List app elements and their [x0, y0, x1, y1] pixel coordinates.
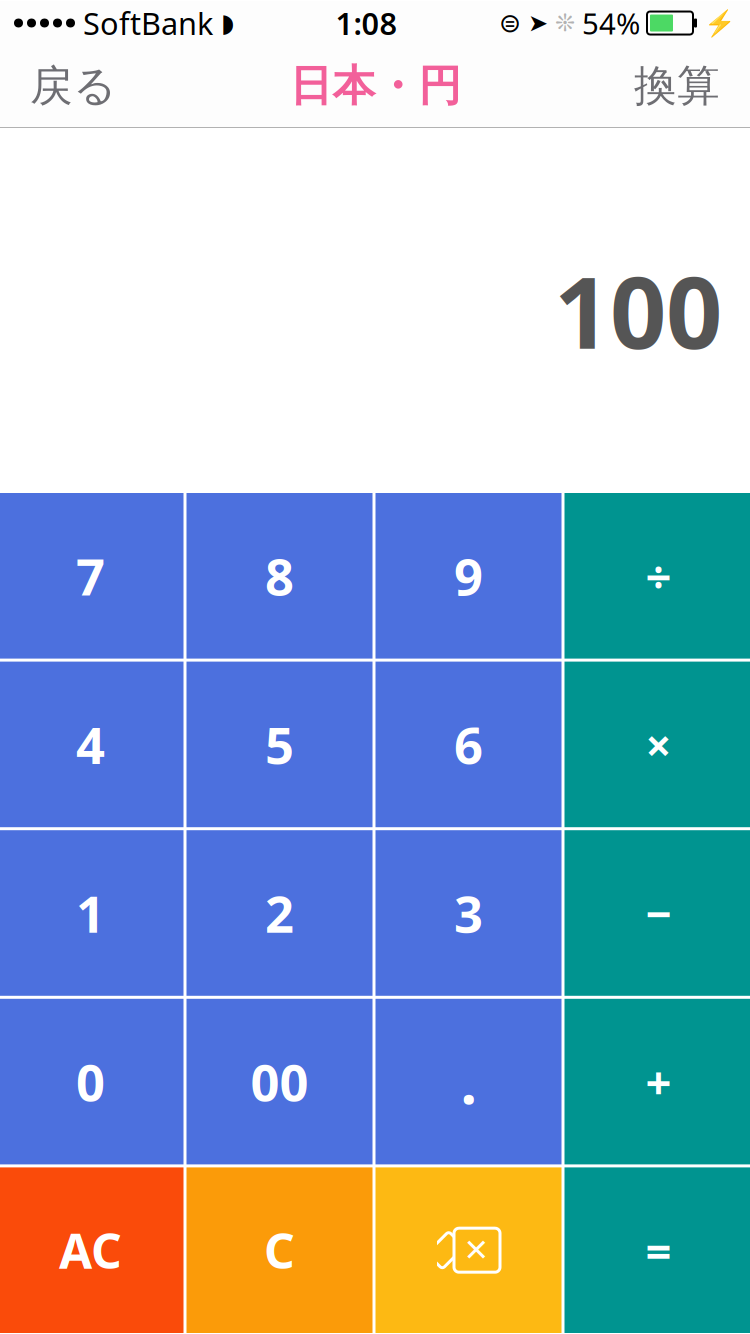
staticText: 2 [265, 879, 294, 947]
button[interactable]: 3 [375, 830, 561, 996]
button[interactable]: 5 [186, 662, 372, 827]
staticText: ◗ [221, 9, 234, 37]
button[interactable]: AC [0, 1167, 183, 1333]
staticText: C [264, 1218, 295, 1282]
staticText: + [645, 1051, 671, 1112]
button[interactable]: 2 [186, 830, 372, 996]
button[interactable]: C [186, 1167, 372, 1333]
staticText: 7 [76, 542, 105, 609]
staticText: × [645, 714, 671, 774]
staticText: 3 [454, 879, 483, 947]
button[interactable]: 4 [0, 662, 183, 827]
staticText: 1 [76, 879, 105, 947]
button[interactable]: = [564, 1167, 750, 1333]
button[interactable]: 8 [186, 493, 372, 659]
button[interactable]: 00 [186, 999, 372, 1164]
staticText: ⚡ [704, 8, 736, 37]
staticText: 0 [76, 1048, 105, 1115]
staticText: 8 [265, 542, 294, 609]
button[interactable]: . [375, 999, 561, 1164]
staticText: 6 [454, 711, 483, 778]
button[interactable]: 1 [0, 830, 183, 996]
staticText: 1:08 [335, 3, 397, 43]
staticText: ÷ [645, 546, 671, 606]
staticText: ✕ [463, 1233, 489, 1268]
staticText: 9 [454, 542, 483, 609]
staticText: 換算 [634, 60, 720, 112]
staticText: 100 [554, 245, 722, 376]
staticText: SoftBank [83, 3, 213, 43]
staticText: ⊜ [499, 8, 521, 38]
staticText: 日本・円 [289, 60, 461, 112]
staticText: 4 [76, 711, 105, 778]
button[interactable]: 9 [375, 493, 561, 659]
button[interactable]: − [564, 830, 750, 996]
button[interactable]: + [564, 999, 750, 1164]
button[interactable]: 7 [0, 493, 183, 659]
button[interactable]: 0 [0, 999, 183, 1164]
staticText: 5 [265, 711, 294, 778]
button[interactable]: Backspace [375, 1167, 561, 1333]
button[interactable]: × [564, 662, 750, 827]
button[interactable]: 換算 [604, 45, 750, 127]
button[interactable]: ÷ [564, 493, 750, 659]
staticText: = [645, 1220, 671, 1280]
staticText: AC [59, 1218, 122, 1282]
staticText: ❊ [555, 9, 575, 37]
staticText: − [645, 883, 671, 943]
staticText: 戻る [30, 60, 117, 112]
staticText: 00 [250, 1048, 308, 1115]
staticText: 54% [582, 3, 640, 42]
staticText: ➤ [528, 9, 548, 37]
button[interactable]: 6 [375, 662, 561, 827]
button[interactable]: 戻る [0, 45, 147, 127]
staticText: . [460, 1043, 476, 1120]
